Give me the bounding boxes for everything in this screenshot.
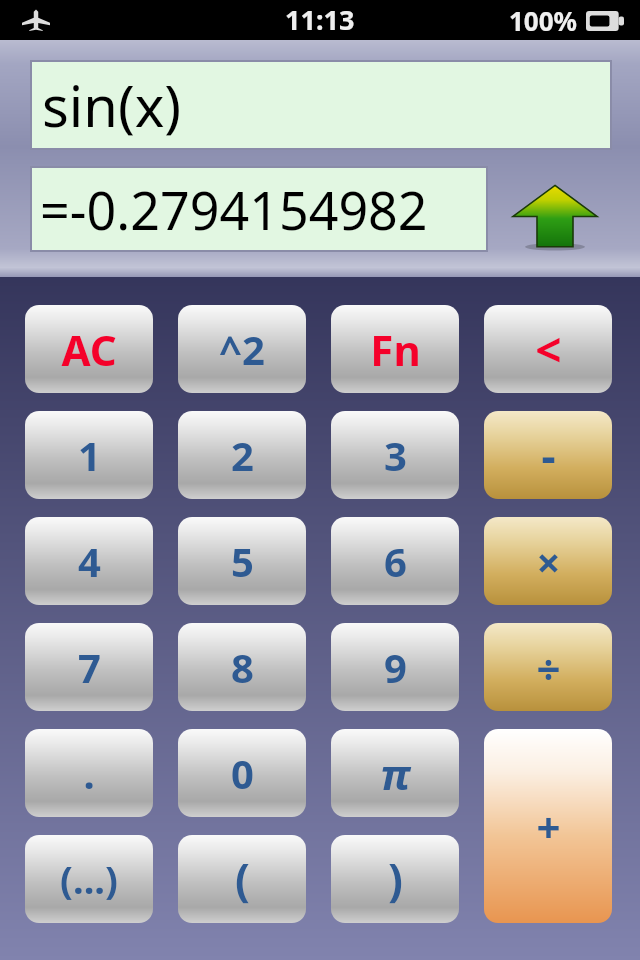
staticText: 6 xyxy=(384,534,407,588)
button[interactable]: 6 xyxy=(331,517,459,605)
staticText: 0 xyxy=(231,746,254,800)
button[interactable]: + xyxy=(484,729,612,923)
staticText: 8 xyxy=(231,640,254,694)
button[interactable]: (...) xyxy=(25,835,153,923)
button[interactable]: Fn xyxy=(331,305,459,393)
button[interactable]: 8 xyxy=(178,623,306,711)
button[interactable]: =-0.2794154982 xyxy=(32,168,486,250)
button[interactable]: 1 xyxy=(25,411,153,499)
staticText: 100% xyxy=(509,3,578,38)
button[interactable]: 3 xyxy=(331,411,459,499)
staticText: 3 xyxy=(384,428,407,482)
button[interactable]: sin(x) xyxy=(32,62,610,148)
staticText: < xyxy=(535,318,562,381)
staticText: (...) xyxy=(60,853,118,905)
staticText: 1 xyxy=(78,428,101,482)
staticText: ) xyxy=(388,849,403,909)
staticText: 4 xyxy=(78,534,101,588)
staticText: 5 xyxy=(231,534,254,588)
button[interactable]: π xyxy=(331,729,459,817)
staticText: 11:13 xyxy=(285,1,355,38)
button[interactable]: < xyxy=(484,305,612,393)
button[interactable]: ) xyxy=(331,835,459,923)
staticText: + xyxy=(536,798,561,855)
staticText: ( xyxy=(235,849,250,909)
button[interactable]: AC xyxy=(25,305,153,393)
button[interactable]: - xyxy=(484,411,612,499)
staticText: 2 xyxy=(231,428,254,482)
button[interactable]: 5 xyxy=(178,517,306,605)
button[interactable]: × xyxy=(484,517,612,605)
staticText: π xyxy=(380,745,411,802)
button[interactable]: ( xyxy=(178,835,306,923)
staticText: ÷ xyxy=(536,639,561,696)
staticText: 9 xyxy=(384,640,407,694)
staticText: 7 xyxy=(78,640,101,694)
staticText: . xyxy=(83,746,95,800)
staticText: =-0.2794154982 xyxy=(40,174,428,245)
staticText: ^2 xyxy=(219,322,265,376)
button[interactable]: 4 xyxy=(25,517,153,605)
button[interactable]: ÷ xyxy=(484,623,612,711)
staticText: × xyxy=(536,533,561,590)
staticText: sin(x) xyxy=(42,67,182,143)
staticText: AC xyxy=(61,321,117,378)
button[interactable]: . xyxy=(25,729,153,817)
button[interactable]: 7 xyxy=(25,623,153,711)
button[interactable]: 9 xyxy=(331,623,459,711)
button[interactable]: ^2 xyxy=(178,305,306,393)
button[interactable]: 2 xyxy=(178,411,306,499)
staticText: Fn xyxy=(370,321,421,378)
staticText: - xyxy=(541,425,556,485)
button[interactable]: Submit expression xyxy=(505,178,605,252)
button[interactable]: 0 xyxy=(178,729,306,817)
